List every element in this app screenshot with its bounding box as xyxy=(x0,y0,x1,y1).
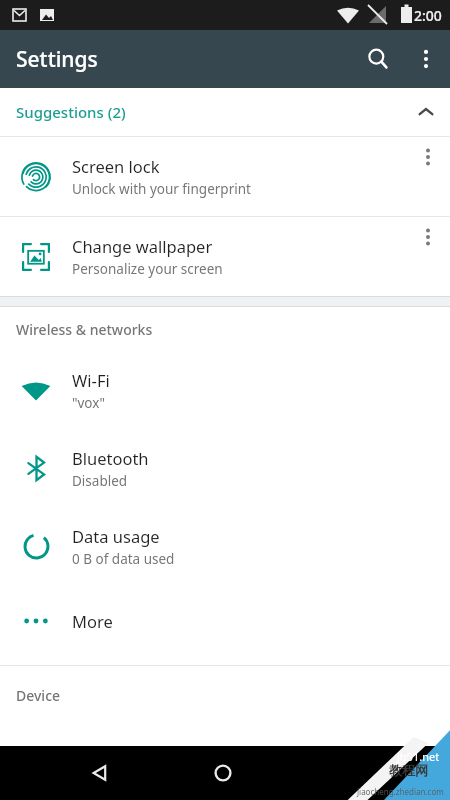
staticText: Suggestions (2) xyxy=(16,102,126,122)
button[interactable]: More options xyxy=(402,35,450,83)
staticText: Screen lock xyxy=(72,155,160,177)
staticText: Unlock with your fingerprint xyxy=(72,180,251,198)
staticText: Change wallpaper xyxy=(72,235,213,257)
staticText: More xyxy=(72,610,113,632)
button[interactable]: Data usage xyxy=(0,507,450,585)
staticText: Personalize your screen xyxy=(72,260,223,278)
staticText: Bluetooth xyxy=(72,447,149,469)
staticText: Device xyxy=(16,686,61,705)
button[interactable]: Change wallpaper xyxy=(0,217,450,296)
staticText: jb51.net xyxy=(397,749,440,764)
staticText: 教程网 xyxy=(389,762,428,778)
staticText: Wireless & networks xyxy=(16,320,153,339)
button[interactable]: Screen lock xyxy=(0,137,450,216)
button[interactable]: Search xyxy=(354,35,402,83)
staticText: Disabled xyxy=(72,472,128,490)
staticText: jiaocheng.zhedian.com xyxy=(357,786,444,797)
button[interactable]: Bluetooth xyxy=(0,429,450,507)
staticText: 0 B of data used xyxy=(72,550,175,568)
staticText: 2:00 xyxy=(414,6,442,25)
button[interactable]: Wi-Fi xyxy=(0,351,450,429)
button[interactable]: Home xyxy=(201,751,245,795)
button[interactable]: Suggestion options xyxy=(406,217,450,296)
staticText: Wi-Fi xyxy=(72,369,110,391)
other: Collapse suggestions xyxy=(402,88,450,136)
button[interactable]: Suggestions (2) xyxy=(0,88,450,136)
button[interactable]: More xyxy=(0,585,450,657)
staticText: Data usage xyxy=(72,525,160,547)
staticText: "vox" xyxy=(72,394,105,412)
button[interactable]: Suggestion options xyxy=(406,137,450,216)
button[interactable]: Back xyxy=(78,751,122,795)
staticText: Settings xyxy=(16,45,98,74)
